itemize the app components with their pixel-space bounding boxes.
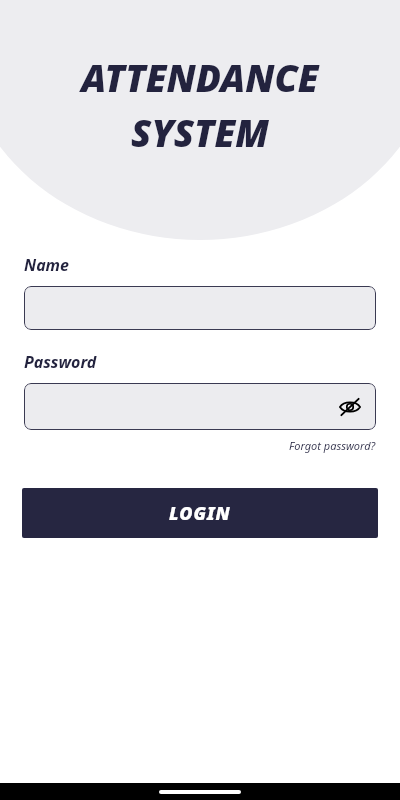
staticText: Name [24, 254, 69, 276]
button[interactable]: LOGIN [22, 488, 378, 538]
staticText: ATTENDANCE [81, 52, 319, 102]
button[interactable]: Forgot password? [289, 438, 376, 453]
staticText: LOGIN [169, 501, 231, 526]
button[interactable]: Show password [24, 383, 376, 430]
staticText: SYSTEM [131, 107, 269, 157]
button[interactable] [24, 286, 376, 330]
button[interactable]: Show password [332, 389, 368, 425]
staticText: Password [24, 351, 97, 373]
staticText: Forgot password? [289, 438, 376, 453]
